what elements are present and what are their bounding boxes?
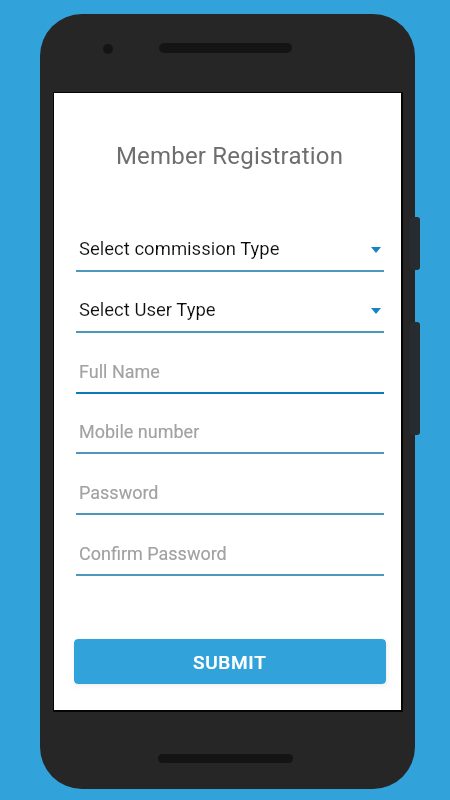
button[interactable]: Select commission Type: [76, 237, 384, 272]
staticText: Password: [79, 482, 159, 503]
button[interactable]: Select User Type: [76, 298, 384, 333]
staticText: Full Name: [79, 361, 160, 382]
other: Open dropdown: [371, 247, 381, 253]
staticText: SUBMIT: [193, 651, 267, 673]
other: Open dropdown: [371, 308, 381, 314]
staticText: Select commission Type: [79, 238, 280, 260]
button[interactable]: Full Name: [76, 359, 384, 394]
button[interactable]: Confirm Password: [76, 541, 384, 576]
staticText: Select User Type: [79, 299, 216, 321]
staticText: Member Registration: [56, 142, 403, 170]
button[interactable]: Mobile number: [76, 419, 384, 454]
button[interactable]: SUBMIT: [74, 639, 386, 684]
button[interactable]: Password: [76, 480, 384, 515]
staticText: Confirm Password: [79, 543, 227, 564]
staticText: Mobile number: [79, 421, 200, 442]
